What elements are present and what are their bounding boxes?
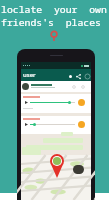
- button[interactable]: [21, 81, 91, 92]
- staticText: loclate your own: [1, 3, 107, 16]
- button[interactable]: [21, 94, 91, 113]
- button[interactable]: More options: [85, 74, 90, 79]
- staticText: user: [23, 71, 36, 79]
- button[interactable]: Share: [76, 74, 81, 79]
- staticText: friends's places: [1, 16, 101, 29]
- button[interactable]: [21, 116, 91, 134]
- button[interactable]: Record voice message: [69, 75, 72, 78]
